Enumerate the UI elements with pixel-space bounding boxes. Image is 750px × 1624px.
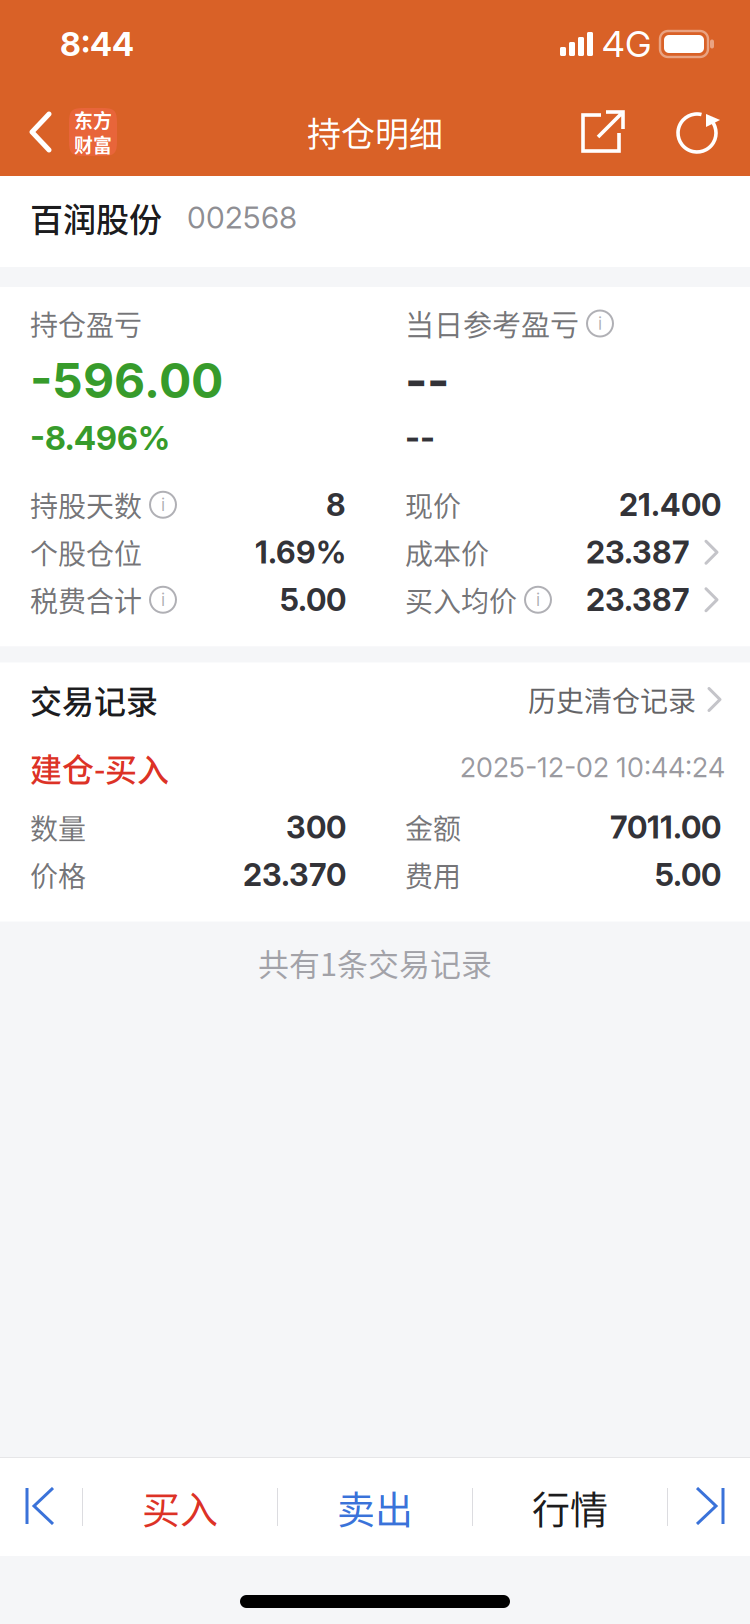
staticText: 交易记录	[30, 676, 158, 723]
staticText: i	[536, 589, 540, 610]
staticText: i	[161, 494, 165, 515]
staticText: 费用	[405, 854, 461, 895]
staticText: 7011.00	[610, 808, 721, 846]
staticText: 持仓明细	[307, 107, 443, 157]
staticText: 持仓盈亏	[30, 303, 142, 344]
button[interactable]: 历史清仓记录	[528, 679, 724, 720]
staticText: 成本价	[405, 532, 489, 572]
staticText: 2025-12-02 10:44:24	[460, 751, 725, 784]
staticText: --	[405, 351, 449, 409]
staticText: 建仓-买入	[30, 744, 169, 791]
staticText: i	[161, 589, 165, 610]
button[interactable]: 卖出	[278, 1458, 472, 1556]
staticText: 4G	[602, 22, 651, 66]
staticText: 税费合计	[30, 579, 142, 620]
staticText: 买入	[142, 1479, 218, 1534]
staticText: 价格	[30, 854, 86, 895]
staticText: 002568	[187, 199, 297, 236]
staticText: 8:44	[60, 24, 134, 64]
staticText: 21.400	[619, 486, 721, 523]
staticText: 卖出	[337, 1479, 413, 1534]
staticText: --	[405, 417, 435, 457]
staticText: 23.387	[586, 533, 689, 571]
button[interactable]: Last page	[668, 1458, 750, 1556]
staticText: 现价	[405, 484, 461, 525]
staticText: 300	[286, 808, 346, 846]
staticText: 金额	[405, 807, 461, 847]
staticText: 历史清仓记录	[528, 679, 696, 720]
staticText: 5.00	[280, 581, 346, 618]
staticText: i	[598, 313, 602, 334]
staticText: 共有1条交易记录	[258, 940, 492, 985]
staticText: 当日参考盈亏	[405, 302, 579, 345]
staticText: 财富	[74, 130, 112, 158]
staticText: 1.69%	[255, 533, 346, 571]
button[interactable]: Refresh	[660, 88, 736, 176]
staticText: 东方	[74, 106, 112, 133]
staticText: -8.496%	[30, 418, 170, 458]
staticText: 5.00	[655, 856, 721, 893]
staticText: 百润股份	[30, 194, 162, 241]
staticText: 持股天数	[30, 484, 142, 525]
staticText: 数量	[30, 807, 86, 847]
button[interactable]: 行情	[473, 1458, 667, 1556]
button[interactable]: First page	[0, 1458, 82, 1556]
staticText: 买入均价	[405, 579, 517, 620]
staticText: -596.00	[30, 351, 223, 410]
staticText: 23.370	[243, 856, 346, 893]
staticText: 8	[326, 486, 346, 523]
staticText: 23.387	[586, 581, 689, 618]
button[interactable]: Back	[0, 88, 127, 176]
staticText: 行情	[532, 1479, 608, 1534]
button[interactable]	[563, 88, 643, 176]
button[interactable]: 买入	[83, 1458, 277, 1556]
staticText: 个股仓位	[30, 532, 142, 572]
